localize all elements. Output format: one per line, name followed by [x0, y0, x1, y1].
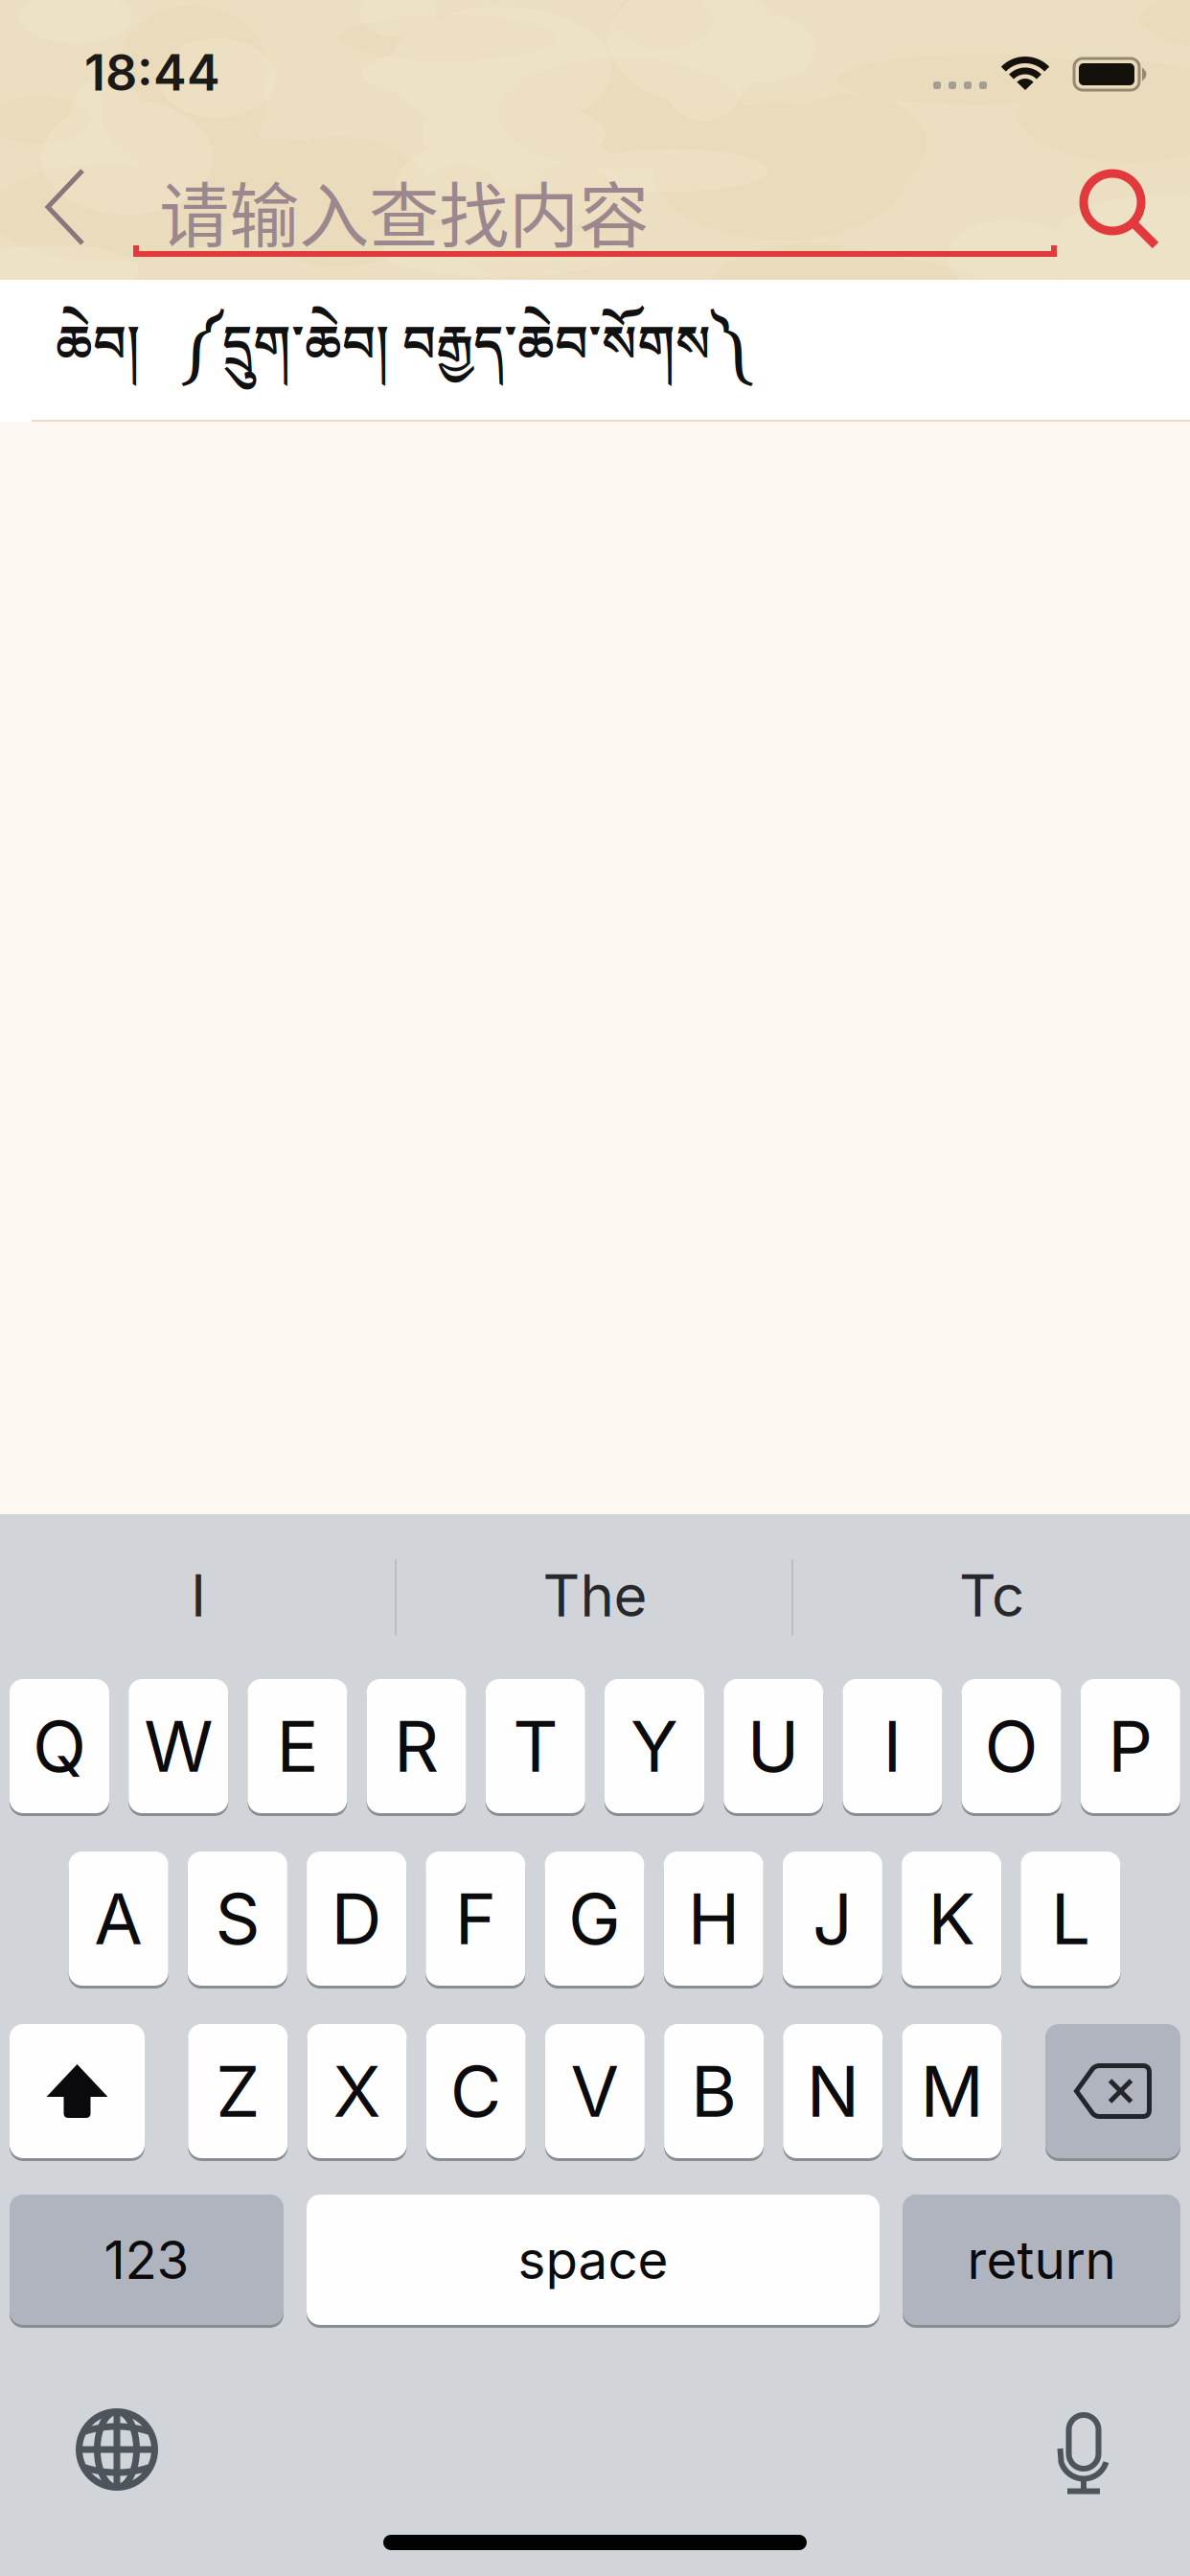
staticText: V [570, 2049, 619, 2134]
button[interactable]: Shift [10, 2024, 145, 2158]
button[interactable]: G [545, 1851, 644, 1986]
button[interactable]: B [664, 2024, 764, 2158]
button[interactable]: I [843, 1679, 942, 1813]
staticText: L [1051, 1876, 1090, 1961]
button[interactable]: C [426, 2024, 526, 2158]
button[interactable]: O [962, 1679, 1061, 1813]
button[interactable]: D [307, 1851, 406, 1986]
staticText: A [94, 1876, 143, 1961]
staticText: M [920, 2049, 984, 2134]
button[interactable]: Dictation [0, 1514, 1114, 2495]
staticText: Q [33, 1704, 86, 1789]
button[interactable]: Search [0, 0, 1163, 253]
staticText: I [191, 1561, 206, 1630]
button[interactable]: ཆེབ། ༼དྲུག་ཆེབ། བརྒྱད་ཆེབ་སོགས༽ [0, 280, 1190, 420]
staticText: Y [630, 1704, 678, 1789]
button[interactable]: X [307, 2024, 407, 2158]
staticText: Z [216, 2049, 260, 2134]
button[interactable]: E [248, 1679, 347, 1813]
button[interactable]: 123 [10, 2195, 284, 2325]
staticText: T [513, 1704, 558, 1789]
staticText: U [747, 1704, 800, 1789]
staticText: C [450, 2049, 502, 2134]
button[interactable]: P [1081, 1679, 1180, 1813]
button[interactable]: N [783, 2024, 883, 2158]
staticText: W [144, 1704, 213, 1789]
staticText: 123 [104, 2228, 189, 2291]
button[interactable]: Next keyboard [0, 1514, 158, 2491]
button[interactable]: Delete [1045, 2024, 1180, 2158]
staticText: I [883, 1704, 902, 1789]
button[interactable]: return [903, 2195, 1180, 2325]
button[interactable]: Z [188, 2024, 288, 2158]
staticText: E [276, 1704, 318, 1789]
button[interactable]: The [397, 1521, 793, 1670]
staticText: F [455, 1876, 496, 1961]
staticText: K [928, 1876, 975, 1961]
button[interactable]: S [188, 1851, 287, 1986]
staticText: O [985, 1704, 1038, 1789]
button[interactable]: R [367, 1679, 466, 1813]
staticText: X [333, 2049, 381, 2134]
staticText: return [967, 2228, 1116, 2291]
staticText: space [518, 2228, 668, 2291]
button[interactable]: J [783, 1851, 882, 1986]
staticText: Tc [959, 1561, 1024, 1630]
button[interactable]: space [307, 2195, 880, 2325]
button[interactable]: Y [605, 1679, 704, 1813]
staticText: 18:44 [84, 42, 220, 102]
button[interactable]: T [486, 1679, 585, 1813]
button[interactable]: L [1021, 1851, 1120, 1986]
staticText: ཆེབ། ༼དྲུག་ཆེབ། བརྒྱད་ཆེབ་སོགས༽ [56, 287, 748, 430]
staticText: 请输入查找内容 [159, 160, 649, 262]
staticText: D [331, 1876, 382, 1961]
button[interactable]: W [129, 1679, 228, 1813]
button[interactable]: A [69, 1851, 168, 1986]
staticText: R [394, 1704, 439, 1789]
button[interactable]: F [426, 1851, 525, 1986]
button[interactable]: Q [10, 1679, 109, 1813]
button[interactable]: I [0, 1521, 397, 1670]
staticText: S [215, 1876, 260, 1961]
staticText: J [812, 1876, 853, 1961]
staticText: B [691, 2049, 737, 2134]
button[interactable]: Tc [793, 1521, 1190, 1670]
button[interactable]: U [724, 1679, 823, 1813]
staticText: N [807, 2049, 859, 2134]
staticText: G [568, 1876, 621, 1961]
staticText: P [1108, 1704, 1153, 1789]
button[interactable]: V [545, 2024, 645, 2158]
staticText: H [688, 1876, 739, 1961]
button[interactable]: Back [0, 0, 82, 243]
staticText: The [543, 1561, 647, 1630]
button[interactable]: K [902, 1851, 1001, 1986]
button[interactable]: M [902, 2024, 1002, 2158]
button[interactable]: H [664, 1851, 763, 1986]
